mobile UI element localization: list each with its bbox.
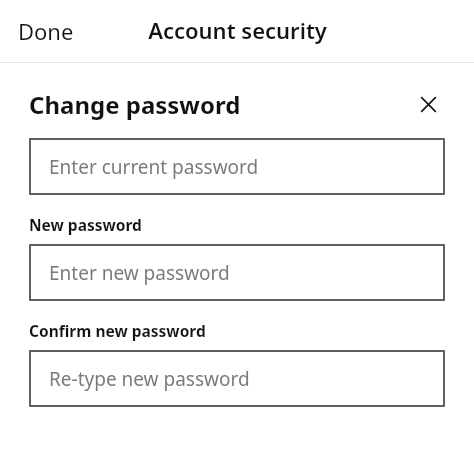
button[interactable]: Close [411,87,445,121]
staticText: Change password [29,88,241,121]
button[interactable]: Enter new password [29,244,445,301]
staticText: Enter current password [49,154,259,180]
button[interactable]: Re-type new password [29,350,445,407]
staticText: Re-type new password [49,366,250,392]
staticText: Done [18,16,74,46]
button[interactable]: Enter current password [29,138,445,195]
staticText: Enter new password [49,260,230,286]
staticText: Account security [148,15,327,45]
button[interactable]: Done [6,10,86,52]
staticText: Confirm new password [29,320,206,341]
staticText: New password [29,214,142,235]
